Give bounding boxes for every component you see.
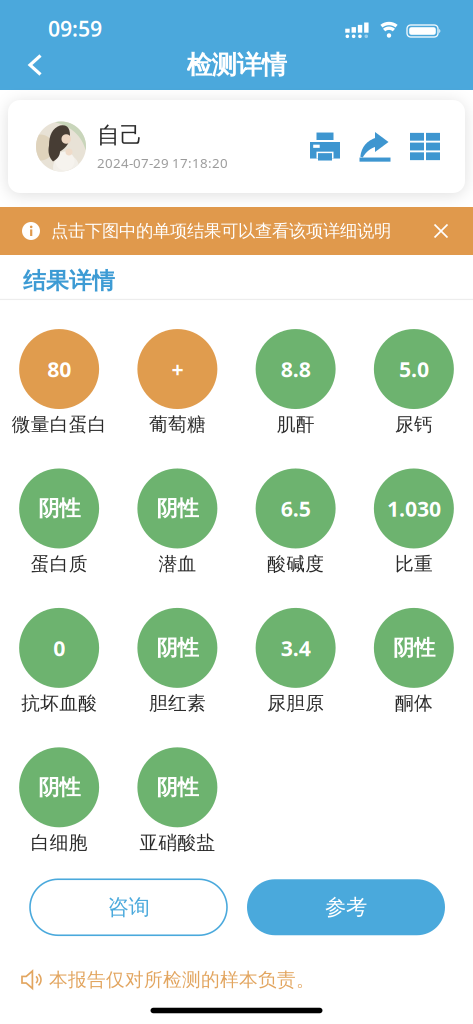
staticText: 胆红素 xyxy=(149,692,206,715)
button[interactable]: 阴性 xyxy=(0,747,118,854)
staticText: 潜血 xyxy=(158,552,196,575)
staticText: 2024-07-29 17:18:20 xyxy=(97,154,228,172)
staticText: + xyxy=(171,355,183,383)
button[interactable]: Back xyxy=(15,45,55,85)
staticText: 阴性 xyxy=(393,635,435,661)
staticText: 80 xyxy=(47,355,71,383)
staticText: 阴性 xyxy=(156,774,198,800)
staticText: 肌酐 xyxy=(277,413,315,436)
staticText: 自己 xyxy=(97,121,143,149)
button[interactable]: 阴性 xyxy=(118,608,236,715)
button[interactable]: Print xyxy=(308,129,342,163)
staticText: 比重 xyxy=(395,552,433,575)
staticText: 亚硝酸盐 xyxy=(139,831,215,854)
staticText: 尿钙 xyxy=(395,413,433,436)
staticText: 微量白蛋白 xyxy=(12,413,107,436)
staticText: 6.5 xyxy=(281,494,311,523)
button[interactable]: 阴性 xyxy=(355,608,473,715)
button[interactable]: 8.8 xyxy=(236,329,355,436)
staticText: 09:59 xyxy=(48,14,102,43)
staticText: 检测详情 xyxy=(186,49,286,80)
button[interactable]: + xyxy=(118,329,236,436)
button[interactable]: Grid view xyxy=(408,129,442,163)
staticText: 葡萄糖 xyxy=(149,413,206,436)
staticText: 点击下图中的单项结果可以查看该项详细说明 xyxy=(51,220,391,242)
button[interactable]: 6.5 xyxy=(236,468,355,575)
staticText: 1.030 xyxy=(387,494,441,523)
staticText: 咨询 xyxy=(107,894,149,920)
staticText: 尿胆原 xyxy=(267,692,324,715)
staticText: 白细胞 xyxy=(31,831,88,854)
button[interactable]: 3.4 xyxy=(236,608,355,715)
button[interactable]: 阴性 xyxy=(118,468,236,575)
button[interactable]: 阴性 xyxy=(118,747,236,854)
staticText: 蛋白质 xyxy=(31,552,88,575)
button[interactable]: Close xyxy=(426,216,456,246)
button[interactable]: Share xyxy=(358,129,392,163)
button[interactable]: 0 xyxy=(0,608,118,715)
button[interactable]: 5.0 xyxy=(355,329,473,436)
staticText: 本报告仅对所检测的样本负责。 xyxy=(49,968,315,991)
staticText: 阴性 xyxy=(156,495,198,522)
button[interactable]: 80 xyxy=(0,329,118,436)
staticText: 8.8 xyxy=(281,355,311,383)
staticText: 抗坏血酸 xyxy=(21,692,97,715)
staticText: 结果详情 xyxy=(23,267,115,295)
staticText: 0 xyxy=(53,634,65,662)
staticText: 阴性 xyxy=(38,495,80,522)
button[interactable]: 参考 xyxy=(247,879,445,935)
button[interactable]: 阴性 xyxy=(0,468,118,575)
staticText: 5.0 xyxy=(399,355,429,383)
staticText: 参考 xyxy=(325,894,367,920)
button[interactable]: 1.030 xyxy=(355,468,473,575)
staticText: 酮体 xyxy=(395,692,433,715)
staticText: 3.4 xyxy=(281,634,311,662)
staticText: 阴性 xyxy=(38,774,80,800)
button[interactable]: 咨询 xyxy=(30,879,227,935)
staticText: 阴性 xyxy=(156,635,198,661)
staticText: 酸碱度 xyxy=(267,552,324,575)
